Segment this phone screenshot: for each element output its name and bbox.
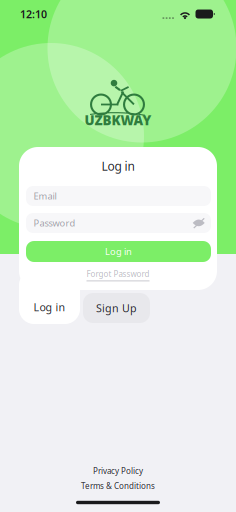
button[interactable]: Privacy Policy xyxy=(93,466,143,476)
staticText: Log in xyxy=(33,300,65,314)
staticText: Log in xyxy=(105,245,132,258)
button[interactable]: Log in xyxy=(26,241,211,262)
staticText: Terms & Conditions xyxy=(81,481,155,491)
staticText: 12:10 xyxy=(20,7,47,21)
button[interactable]: Log in xyxy=(19,290,80,324)
staticText: Email xyxy=(33,190,56,202)
button[interactable]: Sign Up xyxy=(83,293,150,323)
staticText: Log in xyxy=(101,158,134,174)
staticText: Forgot Password xyxy=(86,269,149,279)
staticText: Privacy Policy xyxy=(93,466,143,476)
staticText: Password xyxy=(33,217,75,229)
button[interactable]: Terms & Conditions xyxy=(81,481,155,491)
staticText: UZBKWAY xyxy=(84,111,151,129)
staticText: Sign Up xyxy=(96,301,137,315)
button[interactable]: Forgot Password xyxy=(86,269,149,279)
